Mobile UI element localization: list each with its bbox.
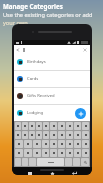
button[interactable] (74, 149, 81, 157)
button[interactable] (82, 122, 89, 130)
button[interactable]: Space (37, 158, 64, 166)
button[interactable] (36, 131, 42, 139)
button[interactable]: Back (14, 45, 90, 54)
button[interactable] (42, 140, 49, 148)
button[interactable] (74, 140, 81, 148)
button[interactable] (82, 131, 89, 139)
button[interactable] (82, 149, 89, 157)
button[interactable] (50, 131, 57, 139)
button[interactable] (58, 140, 65, 148)
staticText: Lodging (27, 110, 44, 116)
staticText: Use the existing categories or add (3, 11, 93, 19)
button[interactable] (24, 140, 32, 148)
button[interactable] (50, 140, 57, 148)
staticText: your own (3, 19, 28, 27)
staticText: Gifts Received (27, 93, 55, 99)
staticText: Birthdays (27, 59, 46, 65)
button[interactable] (33, 149, 41, 157)
button[interactable] (22, 131, 28, 139)
button[interactable] (58, 131, 65, 139)
button[interactable] (74, 122, 81, 130)
button[interactable] (29, 131, 35, 139)
button[interactable] (50, 149, 57, 157)
button[interactable]: Back (70, 169, 78, 175)
button[interactable] (50, 122, 57, 130)
other: Clear (83, 48, 87, 52)
button[interactable] (66, 122, 73, 130)
staticText: Manage Categories (3, 2, 63, 10)
button[interactable] (43, 122, 49, 130)
button[interactable] (33, 140, 41, 148)
button[interactable] (24, 149, 32, 157)
button[interactable] (66, 140, 73, 148)
button[interactable]: Birthdays (14, 54, 90, 70)
button[interactable]: Lodging (14, 105, 90, 121)
button[interactable] (36, 122, 42, 130)
button[interactable] (22, 122, 28, 130)
button[interactable] (15, 140, 23, 148)
button[interactable]: Recents (26, 169, 34, 175)
staticText: Cards (27, 76, 39, 82)
button[interactable] (29, 122, 35, 130)
button[interactable] (66, 149, 73, 157)
button[interactable] (43, 131, 49, 139)
button[interactable]: Home (48, 169, 56, 175)
button[interactable]: Search (81, 158, 89, 166)
button[interactable] (58, 149, 65, 157)
button[interactable] (66, 131, 73, 139)
button[interactable] (74, 131, 81, 139)
other: Back (16, 48, 20, 52)
button[interactable]: Add category (75, 108, 86, 119)
button[interactable]: Gifts Received (14, 88, 90, 104)
button[interactable] (82, 140, 89, 148)
button[interactable]: Cards (14, 71, 90, 87)
button[interactable] (15, 122, 21, 130)
button[interactable] (58, 122, 65, 130)
button[interactable] (15, 149, 23, 157)
button[interactable] (15, 131, 21, 139)
button[interactable] (42, 149, 49, 157)
